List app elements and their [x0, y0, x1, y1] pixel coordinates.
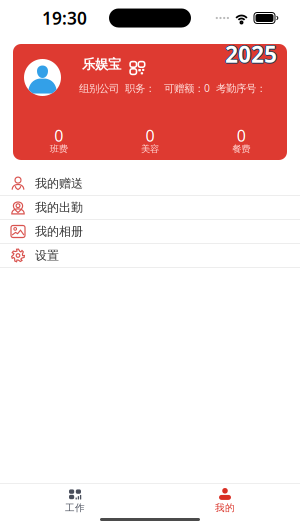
- staticText: 美容: [141, 143, 159, 155]
- staticText: 班费: [50, 143, 68, 155]
- staticText: 设置: [35, 248, 59, 263]
- staticText: 19:30: [42, 6, 87, 29]
- staticText: 0: [237, 125, 246, 146]
- staticText: 2025: [225, 39, 277, 69]
- staticText: 2025: [224, 39, 276, 69]
- staticText: 2025: [225, 38, 277, 68]
- button[interactable]: 工作: [0, 487, 150, 515]
- button[interactable]: 我的赠送: [0, 172, 300, 196]
- staticText: 工作: [65, 502, 85, 514]
- staticText: 乐娱宝: [82, 56, 121, 73]
- staticText: 0: [145, 125, 154, 146]
- staticText: 我的: [215, 502, 235, 514]
- staticText: 2025: [225, 40, 277, 70]
- button[interactable]: 设置: [0, 244, 300, 268]
- staticText: 我的相册: [35, 224, 83, 239]
- staticText: 我的出勤: [35, 200, 83, 215]
- staticText: 组别公司 职务： 可赠额：0 考勤序号：: [79, 81, 266, 95]
- staticText: 我的赠送: [35, 176, 83, 191]
- button[interactable]: 我的相册: [0, 220, 300, 244]
- button[interactable]: 我的出勤: [0, 196, 300, 220]
- staticText: 2025: [226, 39, 278, 69]
- button[interactable]: 我的: [150, 487, 300, 515]
- staticText: 餐费: [232, 143, 250, 155]
- staticText: 0: [54, 125, 63, 146]
